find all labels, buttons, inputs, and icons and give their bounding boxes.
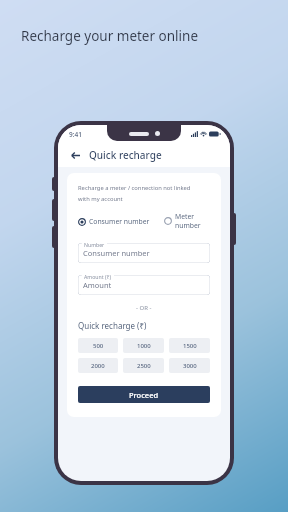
- staticText: Meter number: [175, 212, 210, 230]
- button[interactable]: 2000: [78, 358, 118, 373]
- button[interactable]: 1000: [123, 338, 164, 353]
- staticText: Recharge your meter online: [21, 27, 198, 45]
- staticText: 9:41: [69, 130, 82, 139]
- staticText: - OR -: [136, 304, 152, 312]
- staticText: Consumer number: [83, 248, 150, 258]
- button[interactable]: 3000: [169, 358, 210, 373]
- staticText: Number: [84, 241, 105, 248]
- button[interactable]: 1500: [169, 338, 210, 353]
- staticText: 2000: [91, 362, 105, 370]
- button[interactable]: Proceed: [78, 386, 210, 403]
- staticText: 500: [93, 342, 104, 350]
- staticText: Amount: [83, 280, 112, 290]
- button[interactable]: Back: [68, 148, 82, 162]
- staticText: 2500: [137, 362, 151, 370]
- button[interactable]: 500: [78, 338, 118, 353]
- staticText: Amount (₹): [84, 273, 112, 280]
- staticText: 3000: [183, 362, 197, 370]
- staticText: Recharge a meter / connection not linked: [78, 184, 191, 192]
- staticText: Consumer number: [89, 217, 150, 226]
- staticText: 1000: [137, 342, 151, 350]
- button[interactable]: Consumer number: [78, 243, 210, 263]
- button[interactable]: 2500: [123, 358, 164, 373]
- button[interactable]: Amount: [78, 275, 210, 295]
- button[interactable]: Consumer number: [78, 217, 150, 226]
- staticText: Proceed: [129, 390, 159, 400]
- staticText: with my account: [78, 195, 123, 203]
- button[interactable]: Meter number: [164, 212, 210, 230]
- staticText: Quick recharge (₹): [78, 320, 147, 331]
- staticText: Quick recharge: [89, 148, 162, 162]
- staticText: 1500: [183, 342, 197, 350]
